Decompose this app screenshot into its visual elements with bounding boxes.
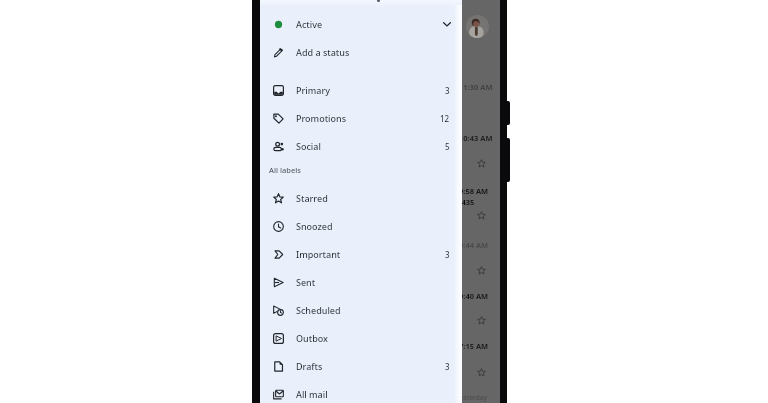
staticText: 5 bbox=[445, 141, 450, 152]
button[interactable]: Sent bbox=[260, 268, 462, 296]
staticText: Scheduled bbox=[296, 304, 341, 316]
staticText: -435 bbox=[459, 197, 475, 207]
staticText: 11:30 AM bbox=[459, 82, 493, 92]
staticText: Outbox bbox=[296, 332, 328, 344]
staticText: esterday bbox=[460, 393, 487, 402]
staticText: 9:40 AM bbox=[459, 291, 489, 301]
staticText: 9:58 AM bbox=[459, 186, 489, 196]
staticText: Starred bbox=[296, 192, 328, 204]
staticText: 10:43 AM bbox=[459, 133, 493, 143]
staticText: Promotions bbox=[296, 112, 347, 124]
button[interactable]: Social bbox=[260, 132, 462, 160]
staticText: All mail bbox=[296, 388, 328, 400]
staticText: 12 bbox=[440, 113, 450, 124]
button[interactable]: Outbox bbox=[260, 324, 462, 352]
staticText: Drafts bbox=[296, 360, 323, 372]
button[interactable]: Snoozed bbox=[260, 212, 462, 240]
staticText: Primary bbox=[296, 84, 330, 96]
staticText: Important bbox=[296, 248, 341, 260]
button[interactable]: Important bbox=[260, 240, 462, 268]
staticText: Active bbox=[296, 18, 323, 30]
staticText: 3 bbox=[445, 361, 450, 372]
button[interactable]: Active bbox=[260, 10, 462, 38]
button[interactable]: Drafts bbox=[260, 352, 462, 380]
staticText: 7:15 AM bbox=[459, 341, 489, 351]
staticText: Sent bbox=[296, 276, 316, 288]
staticText: Social bbox=[296, 140, 321, 152]
staticText: Snoozed bbox=[296, 220, 333, 232]
button[interactable]: Primary bbox=[260, 76, 462, 104]
button[interactable]: All mail bbox=[260, 380, 462, 403]
staticText: Add a status bbox=[296, 46, 350, 58]
button[interactable]: Scheduled bbox=[260, 296, 462, 324]
staticText: All labels bbox=[269, 165, 301, 175]
button[interactable]: Starred bbox=[260, 184, 462, 212]
staticText: 9:44 AM bbox=[459, 240, 489, 250]
button[interactable]: Promotions bbox=[260, 104, 462, 132]
staticText: 3 bbox=[445, 85, 450, 96]
staticText: 3 bbox=[445, 249, 450, 260]
button[interactable]: Add a status bbox=[260, 38, 462, 66]
